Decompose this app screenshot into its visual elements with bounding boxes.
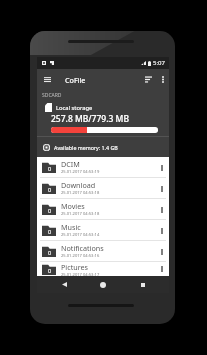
staticText: 25.01.2017 04:53:18 bbox=[61, 190, 100, 196]
button[interactable]: 0 bbox=[37, 262, 169, 276]
staticText: 0 bbox=[48, 249, 52, 256]
button[interactable]: More options bbox=[157, 242, 167, 261]
button[interactable]: More options bbox=[157, 200, 167, 219]
button[interactable]: Open navigation menu bbox=[37, 69, 57, 90]
button[interactable]: Sort bbox=[141, 69, 156, 90]
staticText: 0 bbox=[48, 228, 52, 235]
button[interactable]: 0 bbox=[37, 241, 169, 261]
staticText: 0 bbox=[48, 186, 52, 193]
staticText: 25.01.2017 04:53:17 bbox=[61, 272, 100, 276]
button[interactable]: 0 bbox=[37, 178, 169, 198]
staticText: 5:07 bbox=[153, 59, 165, 67]
staticText: Movies bbox=[61, 201, 85, 211]
staticText: Notifications bbox=[61, 243, 104, 253]
staticText: 25.01.2017 04:53:18 bbox=[61, 211, 100, 217]
staticText: Music bbox=[61, 222, 81, 232]
button[interactable]: 0 bbox=[37, 199, 169, 219]
button[interactable]: More options bbox=[157, 262, 167, 276]
staticText: Local storage bbox=[56, 104, 93, 112]
staticText: 257.8 MB/779.3 MB bbox=[51, 113, 129, 125]
staticText: 25.01.2017 04:53:19 bbox=[61, 169, 100, 175]
button[interactable]: Recent apps bbox=[130, 276, 156, 293]
staticText: 0 bbox=[48, 165, 52, 172]
staticText: Pictures bbox=[61, 262, 89, 272]
staticText: SDCARD bbox=[42, 92, 62, 99]
button[interactable]: More options bbox=[156, 69, 169, 90]
button[interactable]: Home bbox=[90, 276, 116, 293]
staticText: CoFile bbox=[65, 75, 86, 85]
button[interactable]: More options bbox=[157, 221, 167, 240]
staticText: 25.01.2017 04:53:14 bbox=[61, 232, 100, 238]
staticText: Available memory: 1.4 GB bbox=[54, 144, 118, 151]
button[interactable]: More options bbox=[157, 179, 167, 198]
staticText: 0 bbox=[48, 207, 52, 214]
staticText: 0 bbox=[48, 267, 52, 274]
button[interactable]: Back bbox=[51, 276, 77, 293]
staticText: 25.01.2017 04:53:16 bbox=[61, 253, 100, 259]
button[interactable]: More options bbox=[157, 158, 167, 177]
button[interactable]: 0 bbox=[37, 220, 169, 240]
staticText: Download bbox=[61, 180, 96, 190]
button[interactable]: 0 bbox=[37, 157, 169, 177]
staticText: DCIM bbox=[61, 159, 80, 169]
